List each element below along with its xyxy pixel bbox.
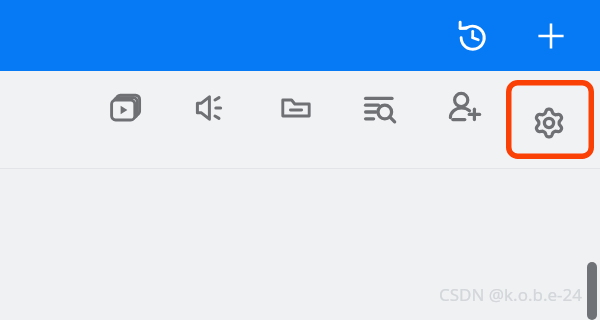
button[interactable]: Videos xyxy=(100,82,152,134)
button[interactable]: Folder xyxy=(270,82,322,134)
button[interactable]: Settings xyxy=(506,80,594,159)
button[interactable]: Sound xyxy=(185,82,237,134)
button[interactable]: Add xyxy=(524,9,578,63)
button[interactable]: Search list xyxy=(354,82,406,134)
staticText: CSDN @k.o.b.e-24 xyxy=(438,283,582,306)
button[interactable]: History xyxy=(444,9,498,63)
button[interactable]: Add person xyxy=(438,82,490,134)
